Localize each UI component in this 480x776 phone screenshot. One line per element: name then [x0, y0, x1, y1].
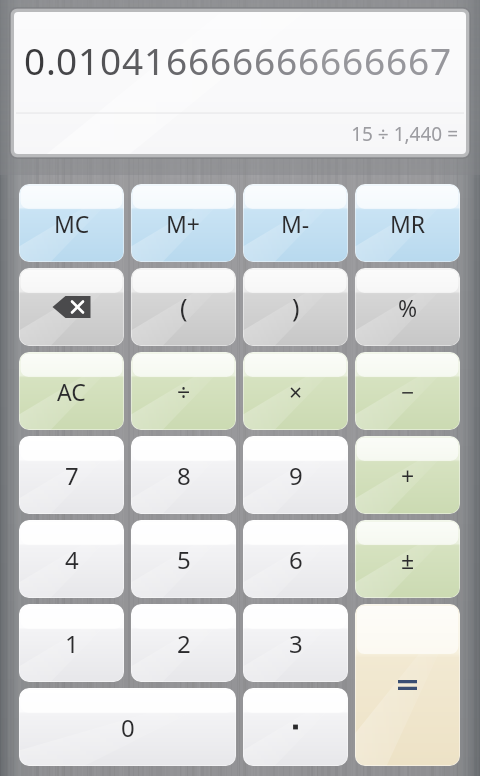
staticText: MR [390, 208, 426, 239]
button[interactable]: ) [243, 268, 348, 346]
staticText: 4 [122, 35, 144, 85]
button[interactable]: M- [243, 184, 348, 262]
button[interactable]: 6 [243, 520, 348, 598]
staticText: 0 [100, 35, 122, 85]
staticText: 5 [177, 543, 191, 576]
staticText: 6 [386, 35, 408, 85]
button[interactable]: 4 [19, 520, 124, 598]
button[interactable]: 2 [131, 604, 236, 682]
staticText: 0 [121, 711, 135, 744]
staticText: 2 [177, 627, 191, 660]
staticText: 0 [24, 35, 46, 85]
staticText: 1 [78, 35, 100, 85]
staticText: 4 [65, 543, 79, 576]
staticText: 1 [65, 627, 79, 660]
staticText: AC [57, 376, 86, 407]
button[interactable]: − [355, 352, 460, 430]
staticText: 6 [188, 35, 210, 85]
staticText: 0 [56, 35, 78, 85]
staticText: 6 [364, 35, 386, 85]
button[interactable]: MC [19, 184, 124, 262]
button[interactable]: Backspace [19, 268, 124, 346]
staticText: 6 [342, 35, 364, 85]
staticText: . [46, 35, 56, 85]
staticText: M- [281, 208, 310, 239]
button[interactable]: × [243, 352, 348, 430]
staticText: 7 [65, 459, 79, 492]
staticText: × [289, 376, 303, 407]
staticText: + [401, 460, 415, 491]
staticText: 6 [166, 35, 188, 85]
staticText: 8 [177, 459, 191, 492]
staticText: 6 [298, 35, 320, 85]
staticText: − [401, 376, 415, 407]
staticText: 7 [430, 35, 452, 85]
button[interactable]: % [355, 268, 460, 346]
staticText: 6 [276, 35, 298, 85]
staticText: 6 [289, 543, 303, 576]
button[interactable]: 1 [19, 604, 124, 682]
button[interactable]: ± [355, 520, 460, 598]
staticText: 1 [144, 35, 166, 85]
staticText: ( [180, 290, 188, 324]
button[interactable]: 0 [19, 688, 236, 766]
staticText: ) [292, 290, 300, 324]
staticText: 15 ÷ 1,440 = [351, 121, 458, 147]
staticText: 6 [408, 35, 430, 85]
button[interactable]: Equals [355, 604, 460, 766]
button[interactable]: 8 [131, 436, 236, 514]
button[interactable]: ÷ [131, 352, 236, 430]
staticText: ± [401, 544, 415, 575]
staticText: 6 [210, 35, 232, 85]
staticText: 9 [289, 459, 303, 492]
staticText: ÷ [177, 376, 191, 407]
button[interactable]: 3 [243, 604, 348, 682]
staticText: 6 [254, 35, 276, 85]
button[interactable]: 5 [131, 520, 236, 598]
button[interactable]: + [355, 436, 460, 514]
staticText: 6 [232, 35, 254, 85]
button[interactable]: M+ [131, 184, 236, 262]
staticText: % [398, 292, 418, 323]
button[interactable]: ( [131, 268, 236, 346]
button[interactable]: AC [19, 352, 124, 430]
button[interactable]: Decimal point [243, 688, 348, 766]
staticText: 6 [320, 35, 342, 85]
button[interactable]: 9 [243, 436, 348, 514]
staticText: MC [54, 208, 90, 239]
staticText: M+ [166, 208, 201, 239]
button[interactable]: 7 [19, 436, 124, 514]
staticText: 3 [289, 627, 303, 660]
button[interactable]: MR [355, 184, 460, 262]
